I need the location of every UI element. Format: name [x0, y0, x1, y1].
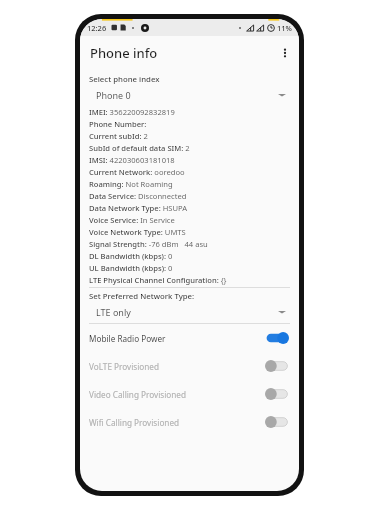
staticText: DL Bandwidth (kbps): 0 — [89, 251, 290, 261]
staticText: Signal Strength: -76 dBm 44 asu — [89, 239, 290, 249]
button[interactable]: More options — [271, 39, 299, 67]
staticText: LTE Physical Channel Configuration: {} — [89, 275, 290, 285]
button[interactable]: Video Calling Provisioned — [89, 380, 290, 408]
staticText: Video Calling Provisioned — [89, 389, 187, 400]
staticText: 12:26 — [87, 23, 107, 33]
staticText: Phone info — [90, 44, 158, 62]
button[interactable]: Phone 0 — [89, 85, 290, 104]
staticText: Voice Service: In Service — [89, 215, 290, 225]
staticText: Set Preferred Network Type: — [89, 291, 195, 302]
staticText: Data Network Type: HSUPA — [89, 203, 290, 213]
staticText: Select phone index — [89, 74, 160, 85]
staticText: SubId of default data SIM: 2 — [89, 143, 290, 153]
staticText: Mobile Radio Power — [89, 333, 166, 344]
staticText: Roaming: Not Roaming — [89, 179, 290, 189]
staticText: Data Service: Disconnected — [89, 191, 290, 201]
staticText: Current subId: 2 — [89, 131, 290, 141]
button[interactable]: VoLTE Provisioned — [89, 352, 290, 380]
staticText: Current Network: ooredoo — [89, 167, 290, 177]
staticText: IMEI: 356220092832819 — [89, 107, 290, 117]
staticText: Wifi Calling Provisioned — [89, 417, 180, 428]
staticText: 11% — [277, 23, 292, 33]
staticText: IMSI: 422030603181018 — [89, 155, 290, 165]
staticText: VoLTE Provisioned — [89, 361, 159, 372]
staticText: LTE only — [96, 306, 131, 318]
button[interactable]: LTE only — [89, 302, 290, 321]
button[interactable]: Wifi Calling Provisioned — [89, 408, 290, 436]
button[interactable]: Mobile Radio Power — [89, 324, 290, 352]
staticText: Voice Network Type: UMTS — [89, 227, 290, 237]
staticText: UL Bandwidth (kbps): 0 — [89, 263, 290, 273]
staticText: Phone Number: — [89, 119, 290, 129]
staticText: Phone 0 — [96, 89, 131, 101]
